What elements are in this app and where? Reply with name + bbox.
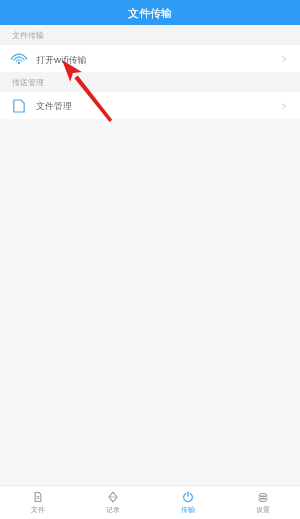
staticText: 文件 <box>31 505 45 514</box>
staticText: 设置 <box>256 505 270 514</box>
staticText: 文件传输 <box>12 30 44 40</box>
staticText: 打开wifi传输 <box>36 53 87 65</box>
button[interactable]: 设置 <box>225 486 300 519</box>
button[interactable]: 打开wifi传输 <box>0 45 300 72</box>
staticText: 传输 <box>181 505 195 514</box>
staticText: 记录 <box>106 505 120 514</box>
button[interactable]: 文件 <box>0 486 75 519</box>
staticText: 文件传输 <box>128 6 172 20</box>
staticText: 传送管理 <box>12 77 44 87</box>
button[interactable]: 传输 <box>150 486 225 519</box>
staticText: 文件管理 <box>36 100 72 111</box>
button[interactable]: 记录 <box>75 486 150 519</box>
button[interactable]: 文件管理 <box>0 92 300 119</box>
